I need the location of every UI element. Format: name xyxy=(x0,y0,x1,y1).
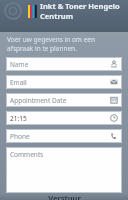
button[interactable]: Name xyxy=(6,57,122,71)
staticText: Appointment Date xyxy=(10,96,110,105)
staticText: Email xyxy=(10,78,110,87)
button[interactable]: Comments xyxy=(6,147,122,193)
staticText: Verstuur xyxy=(48,193,81,200)
button[interactable]: Phone xyxy=(6,129,122,143)
staticText: Phone xyxy=(10,132,110,141)
button[interactable]: Appointment Date xyxy=(6,93,122,107)
button[interactable]: 21:15 xyxy=(6,111,122,125)
staticText: Inkt & Toner Hengelo xyxy=(40,1,120,11)
button[interactable]: Email xyxy=(6,75,122,89)
button[interactable]: Verstuur xyxy=(0,193,128,200)
staticText: Centrum xyxy=(40,11,73,21)
staticText: 21:15 xyxy=(10,114,110,123)
staticText: Comments xyxy=(10,150,44,159)
staticText: Voer uw gegevens in om een afspraak in t… xyxy=(7,35,120,53)
staticText: Name xyxy=(10,60,110,69)
